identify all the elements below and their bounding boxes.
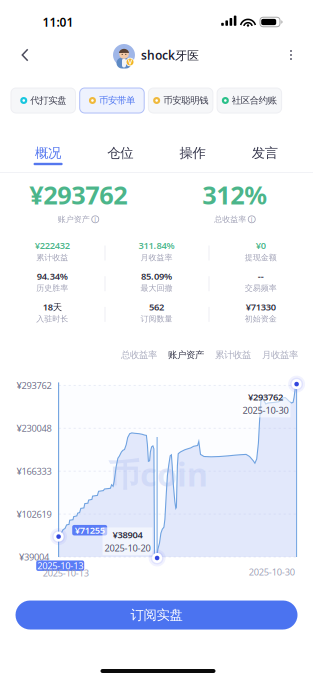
staticText: 发言 bbox=[252, 145, 278, 161]
staticText: ¥39004 bbox=[19, 551, 49, 563]
staticText: 85.09% bbox=[141, 270, 172, 282]
staticText: 入驻时长 bbox=[36, 314, 68, 324]
staticText: 初始资金 bbox=[245, 314, 277, 324]
staticText: 最大回撤 bbox=[140, 283, 172, 293]
staticText: ¥293762 bbox=[16, 379, 51, 391]
button[interactable]: 月收益率 bbox=[262, 345, 298, 365]
staticText: -- bbox=[258, 270, 264, 282]
staticText: 2025-10-30 bbox=[249, 566, 295, 578]
staticText: 历史胜率 bbox=[36, 283, 68, 293]
staticText: 311.84% bbox=[138, 239, 174, 252]
staticText: ¥166333 bbox=[16, 465, 51, 477]
button[interactable]: 代打实盘 bbox=[11, 88, 75, 113]
staticText: 累计收益 bbox=[36, 253, 68, 262]
staticText: shock牙医 bbox=[141, 47, 199, 63]
staticText: 累计收益 bbox=[215, 349, 251, 361]
staticText: 月收益率 bbox=[140, 253, 172, 262]
staticText: ¥71330 bbox=[246, 301, 276, 313]
button[interactable]: 发言 bbox=[229, 138, 301, 172]
button[interactable]: Back bbox=[8, 38, 42, 72]
button[interactable]: 仓位 bbox=[84, 138, 156, 172]
staticText: 94.34% bbox=[37, 270, 68, 282]
staticText: 提现金额 bbox=[245, 253, 277, 262]
staticText: ¥0 bbox=[256, 239, 266, 252]
staticText: 代打实盘 bbox=[30, 95, 66, 106]
button[interactable]: 订阅实盘 bbox=[15, 600, 297, 629]
staticText: ¥222432 bbox=[35, 239, 70, 252]
staticText: V bbox=[128, 58, 132, 66]
staticText: 仓位 bbox=[107, 145, 133, 161]
button[interactable]: More options bbox=[276, 40, 306, 70]
staticText: 2025-10-13 bbox=[37, 559, 83, 572]
staticText: 币coin bbox=[108, 453, 208, 495]
staticText: ¥38904 bbox=[112, 528, 142, 541]
staticText: 312% bbox=[202, 178, 267, 211]
staticText: 总收益率 bbox=[214, 214, 246, 224]
staticText: i bbox=[251, 215, 253, 224]
staticText: 操作 bbox=[180, 145, 206, 161]
staticText: 账户资产 bbox=[168, 349, 204, 361]
staticText: 562 bbox=[149, 301, 164, 313]
button[interactable]: 账户资产 bbox=[168, 345, 204, 365]
staticText: 概况 bbox=[35, 145, 61, 161]
staticText: ¥102619 bbox=[16, 508, 51, 520]
staticText: 社区合约账 bbox=[232, 95, 277, 106]
staticText: 2025-10-13 bbox=[43, 567, 89, 579]
staticText: 订阅数量 bbox=[140, 314, 172, 324]
staticText: 交易频率 bbox=[245, 283, 277, 293]
staticText: 2025-10-20 bbox=[104, 542, 150, 554]
staticText: 账户资产 bbox=[58, 214, 90, 224]
button[interactable]: 总收益率 bbox=[121, 345, 157, 365]
button[interactable]: 币安聪明钱 bbox=[148, 88, 213, 113]
staticText: 11:01 bbox=[42, 14, 73, 30]
button[interactable]: 社区合约账 bbox=[217, 88, 282, 113]
staticText: 币安聪明钱 bbox=[163, 95, 208, 106]
staticText: ¥71255 bbox=[75, 524, 105, 536]
button[interactable]: 累计收益 bbox=[215, 345, 251, 365]
staticText: 总收益率 bbox=[121, 349, 157, 361]
staticText: 18天 bbox=[43, 301, 62, 313]
staticText: 月收益率 bbox=[262, 349, 298, 361]
staticText: ¥293762 bbox=[29, 178, 127, 211]
button[interactable]: 操作 bbox=[156, 138, 229, 172]
staticText: 币安带单 bbox=[99, 95, 135, 106]
staticText: ¥293762 bbox=[248, 391, 283, 403]
button[interactable]: 概况 bbox=[12, 138, 84, 172]
staticText: 2025-10-30 bbox=[242, 404, 288, 416]
button[interactable]: 币安带单 bbox=[80, 88, 144, 113]
staticText: i bbox=[94, 215, 96, 224]
staticText: 订阅实盘 bbox=[130, 607, 182, 623]
staticText: ¥230048 bbox=[16, 422, 51, 434]
